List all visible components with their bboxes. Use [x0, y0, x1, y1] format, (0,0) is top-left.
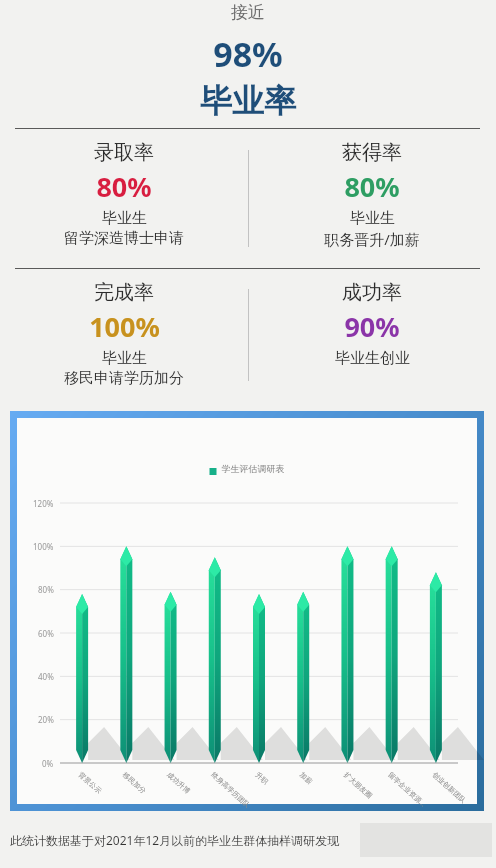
staticText: 留学深造博士申请 — [64, 229, 184, 248]
staticText: 完成率 — [94, 280, 154, 305]
staticText: 毕业生 — [102, 209, 147, 228]
staticText: 毕业生 — [350, 209, 395, 228]
button[interactable]: 获得率 — [248, 129, 496, 268]
staticText: 移民申请学历加分 — [64, 369, 184, 388]
staticText: 80% — [96, 168, 152, 205]
staticText: 90% — [344, 308, 400, 345]
staticText: 获得率 — [342, 140, 402, 165]
staticText: 毕业率 — [200, 81, 296, 121]
staticText: 录取率 — [94, 140, 154, 165]
button[interactable]: 成功率 — [248, 269, 496, 401]
staticText: 98% — [213, 31, 283, 77]
staticText: 成功率 — [342, 280, 402, 305]
staticText: 接近 — [231, 2, 265, 23]
staticText: 80% — [344, 168, 400, 205]
button[interactable]: 完成率 — [0, 269, 248, 401]
staticText: 毕业生创业 — [335, 349, 410, 368]
staticText: 此统计数据基于对2021年12月以前的毕业生群体抽样调研发现 — [10, 832, 340, 848]
staticText: 职务晋升/加薪 — [324, 229, 420, 249]
staticText: 100% — [89, 308, 160, 345]
button[interactable]: 录取率 — [0, 129, 248, 268]
button[interactable]: 学生评估调研表 柱状图 — [10, 411, 484, 811]
staticText: 毕业生 — [102, 349, 147, 368]
